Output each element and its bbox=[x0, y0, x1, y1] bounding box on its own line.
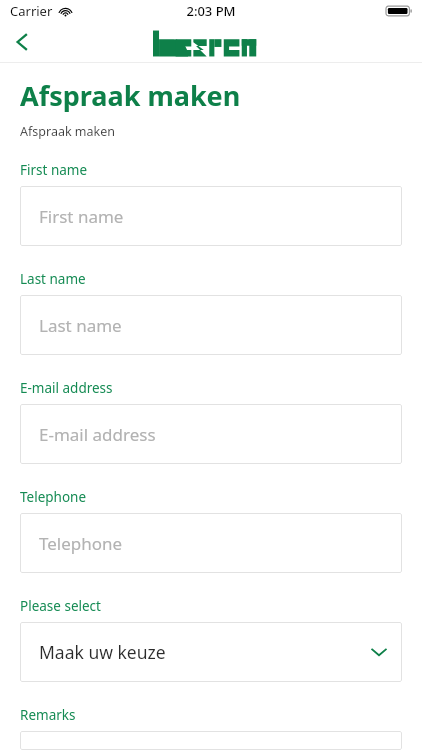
button[interactable]: besren logo bbox=[153, 30, 269, 57]
staticText: First name bbox=[20, 161, 88, 179]
staticText: Telephone bbox=[39, 532, 123, 555]
staticText: Remarks bbox=[20, 706, 76, 724]
button[interactable]: Maak uw keuze bbox=[20, 622, 402, 682]
staticText: First name bbox=[39, 205, 124, 228]
button[interactable]: Last name bbox=[20, 295, 402, 355]
staticText: Afspraak maken bbox=[20, 77, 241, 114]
staticText: E-mail address bbox=[20, 379, 113, 397]
staticText: Last name bbox=[20, 270, 86, 288]
staticText: Last name bbox=[39, 314, 122, 337]
staticText: Carrier bbox=[10, 2, 53, 20]
staticText: Please select bbox=[20, 597, 101, 615]
button[interactable]: Telephone bbox=[20, 513, 402, 573]
staticText: 2:03 PM bbox=[186, 2, 236, 20]
staticText: E-mail address bbox=[39, 423, 156, 446]
button[interactable]: Back bbox=[0, 22, 44, 62]
staticText: Afspraak maken bbox=[20, 123, 115, 140]
button[interactable]: E-mail address bbox=[20, 404, 402, 464]
button[interactable] bbox=[20, 731, 402, 750]
staticText: Telephone bbox=[20, 488, 87, 506]
staticText: Maak uw keuze bbox=[39, 640, 166, 664]
button[interactable]: First name bbox=[20, 186, 402, 246]
